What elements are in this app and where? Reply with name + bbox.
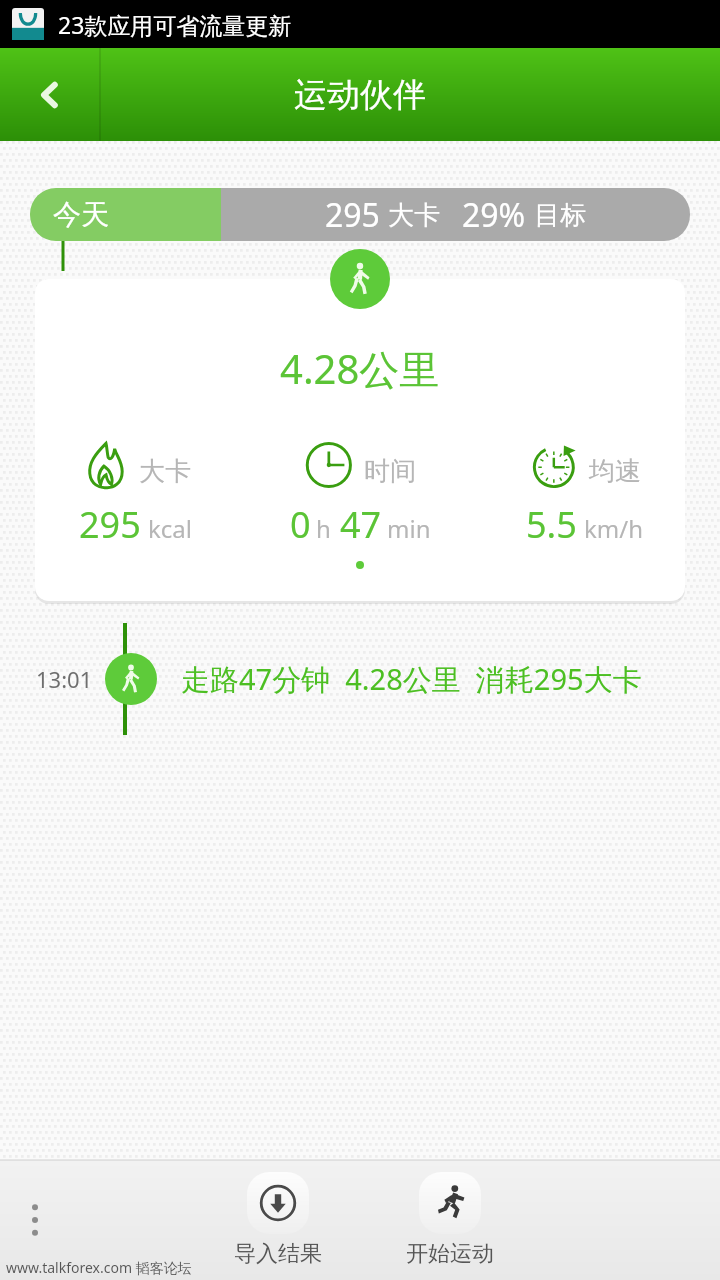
staticText: 走路47分钟 4.28公里 消耗295大卡	[181, 659, 642, 699]
button[interactable]: 4.28公里	[35, 279, 685, 601]
button[interactable]: Walking activity	[330, 249, 390, 309]
staticText: 29%	[462, 193, 526, 237]
button[interactable]: 导入结果	[232, 1172, 324, 1268]
staticText: 运动伙伴	[294, 74, 426, 116]
staticText: www.talkforex.com 韬客论坛	[6, 1258, 192, 1277]
button[interactable]: 开始运动	[404, 1172, 496, 1268]
staticText: 时间	[364, 455, 416, 488]
staticText: 47	[340, 500, 382, 549]
staticText: 大卡	[388, 199, 440, 232]
staticText: min	[387, 512, 431, 545]
staticText: h	[316, 512, 331, 545]
staticText: 大卡	[139, 455, 191, 488]
staticText: 今天	[53, 197, 109, 232]
staticText: 23款应用可省流量更新	[58, 9, 292, 40]
staticText: 均速	[589, 455, 641, 488]
staticText: 导入结果	[234, 1240, 322, 1268]
staticText: 13:01	[36, 664, 93, 694]
staticText: 4.28公里	[280, 341, 440, 396]
button[interactable]: 295	[221, 188, 690, 241]
staticText: 295	[79, 500, 141, 549]
staticText: 5.5	[526, 500, 577, 549]
staticText: 295	[325, 193, 380, 237]
staticText: km/h	[584, 512, 644, 545]
staticText: 开始运动	[406, 1240, 494, 1268]
staticText: 0	[290, 500, 311, 549]
staticText: kcal	[148, 512, 192, 545]
button[interactable]: 今天	[30, 188, 221, 241]
staticText: 目标	[534, 199, 586, 232]
button[interactable]: 13:01	[0, 623, 720, 735]
button[interactable]: More options	[0, 1160, 70, 1280]
button[interactable]: Back	[0, 48, 100, 141]
